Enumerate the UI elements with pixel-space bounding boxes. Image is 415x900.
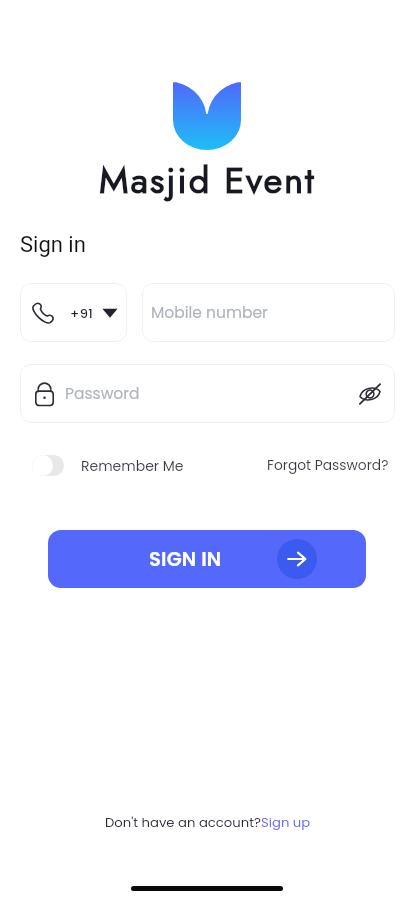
button[interactable]: Mobile number [142, 283, 395, 342]
button[interactable]: Password [20, 364, 395, 423]
staticText: Mobile number [151, 302, 268, 324]
staticText: Don't have an account? [105, 813, 261, 831]
staticText: Remember Me [81, 456, 184, 476]
button[interactable]: SIGN IN [48, 530, 366, 588]
staticText: Masjid Event [99, 154, 316, 207]
button[interactable]: Remember Me [32, 455, 184, 476]
button[interactable]: Continue [277, 539, 317, 579]
button[interactable]: Forgot Password? [267, 456, 395, 475]
button[interactable]: Show password [354, 378, 386, 410]
button[interactable]: Sign up [261, 813, 311, 831]
staticText: SIGN IN [149, 546, 222, 573]
staticText: +91 [70, 304, 94, 322]
button[interactable]: +91 [20, 283, 127, 342]
staticText: Password [65, 383, 140, 405]
staticText: Sign in [20, 232, 86, 258]
